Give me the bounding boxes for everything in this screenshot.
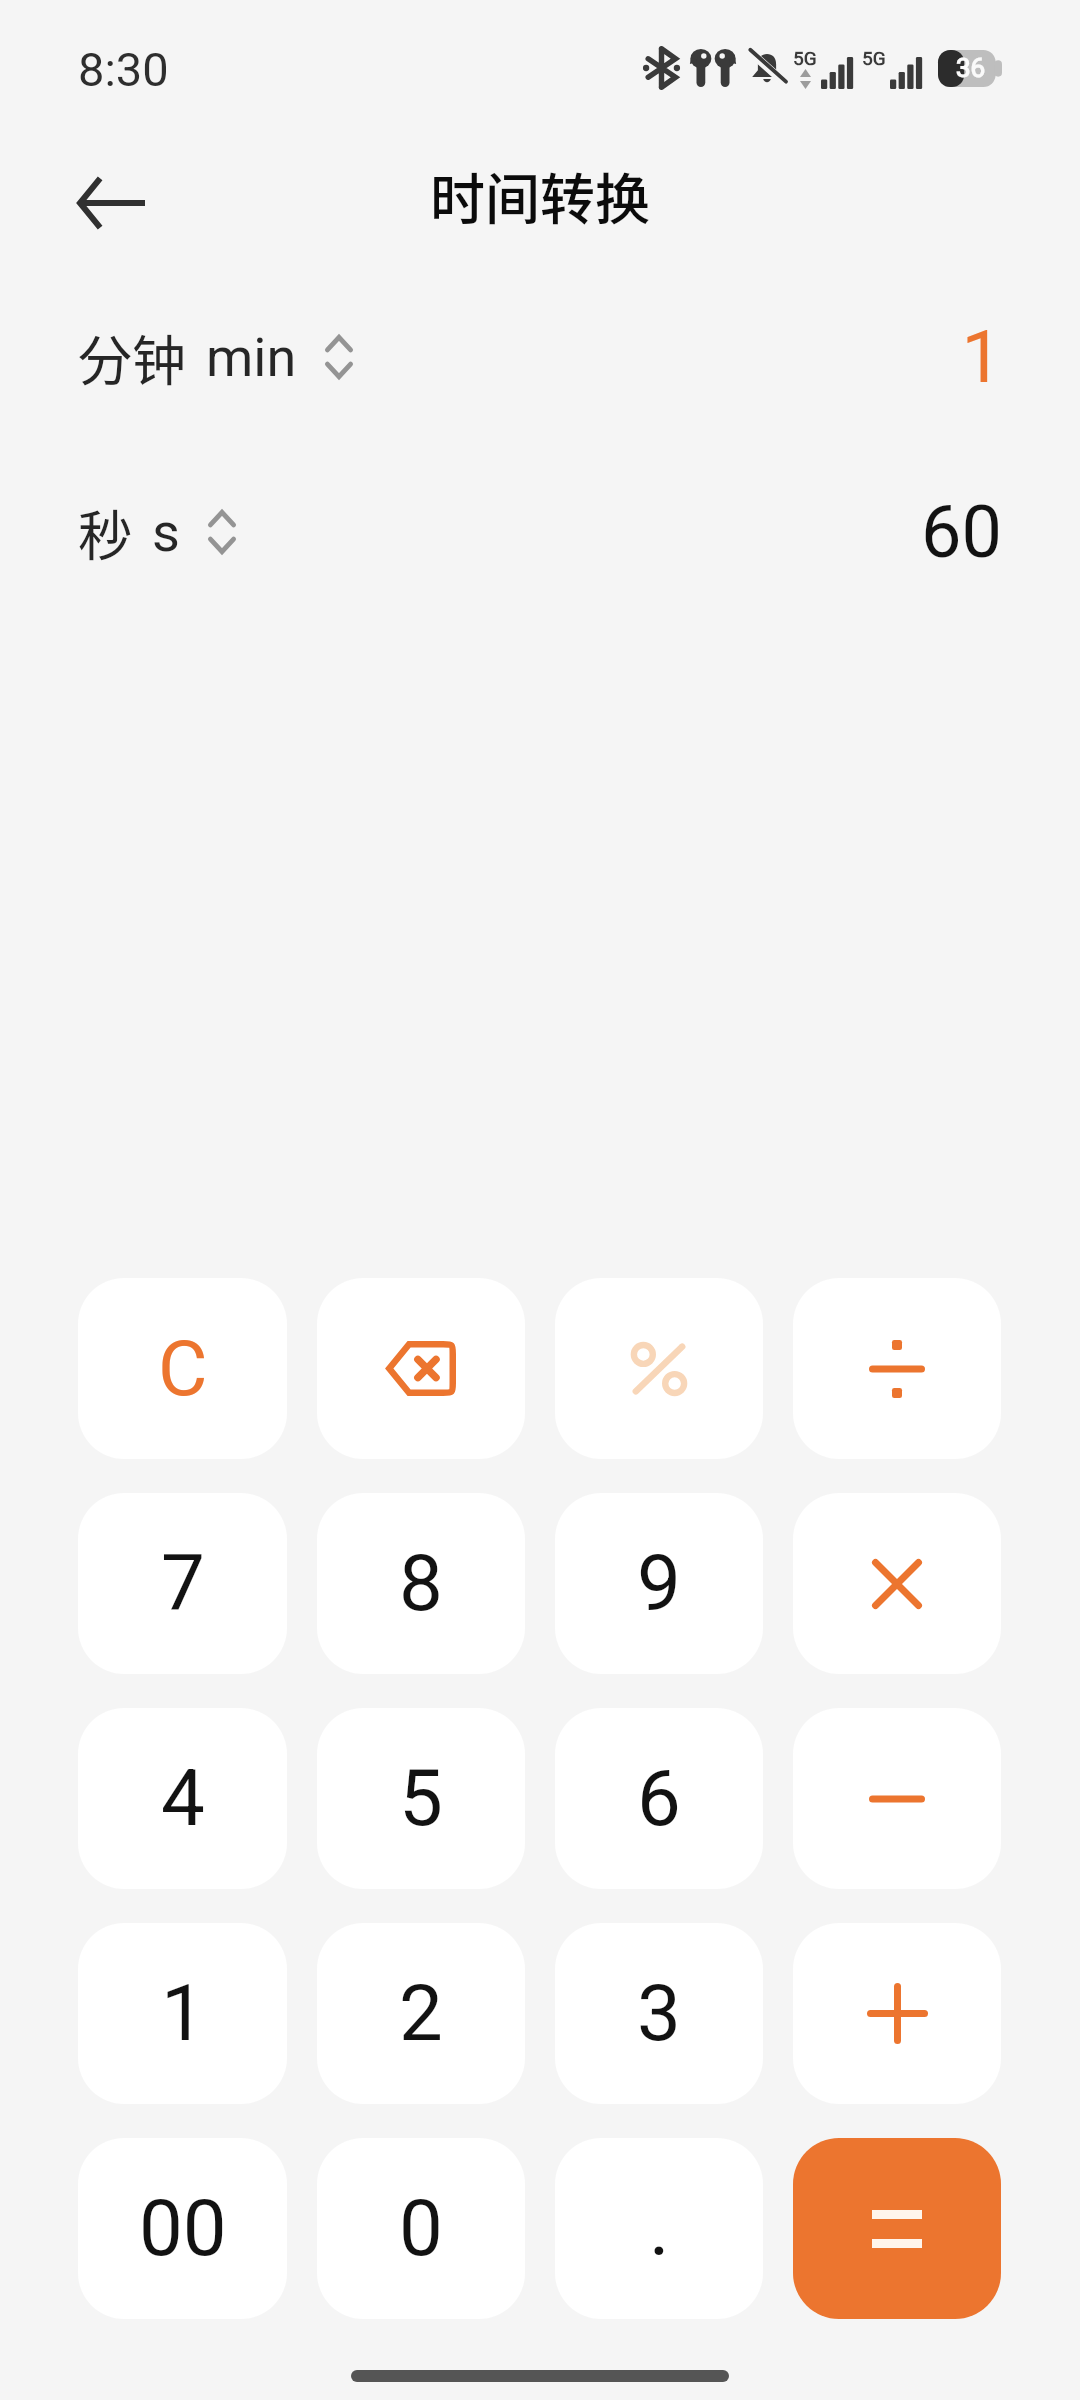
button[interactable]: 0: [317, 2138, 525, 2319]
button[interactable]: 1: [78, 1923, 287, 2104]
staticText: 秒: [78, 493, 132, 571]
button[interactable]: Back: [41, 138, 181, 268]
staticText: 5G: [862, 47, 886, 69]
button[interactable]: 2: [317, 1923, 525, 2104]
staticText: 0: [399, 2183, 443, 2274]
staticText: C: [158, 1324, 208, 1413]
button[interactable]: Delete: [317, 1278, 525, 1459]
staticText: 7: [161, 1538, 205, 1629]
button[interactable]: 5: [317, 1708, 525, 1889]
button[interactable]: Clear: [78, 1278, 287, 1459]
button[interactable]: 6: [555, 1708, 763, 1889]
button[interactable]: Equals: [793, 2138, 1001, 2319]
staticText: 8: [399, 1538, 443, 1629]
staticText: 8:30: [78, 42, 169, 97]
button[interactable]: 8: [317, 1493, 525, 1674]
staticText: 5: [399, 1753, 443, 1844]
button[interactable]: 秒: [0, 445, 1080, 619]
staticText: 60: [921, 490, 1002, 574]
button[interactable]: Percent: [555, 1278, 763, 1459]
staticText: 1: [961, 315, 1002, 399]
staticText: 1: [161, 1968, 205, 2059]
staticText: 00: [139, 2183, 227, 2274]
staticText: 9: [637, 1538, 681, 1629]
button[interactable]: .: [555, 2138, 763, 2319]
staticText: s: [152, 501, 180, 564]
staticText: 2: [399, 1968, 443, 2059]
button[interactable]: 9: [555, 1493, 763, 1674]
button[interactable]: 分钟: [0, 270, 1080, 444]
button[interactable]: 3: [555, 1923, 763, 2104]
staticText: 4: [161, 1753, 205, 1844]
button[interactable]: 4: [78, 1708, 287, 1889]
staticText: 时间转换: [430, 155, 651, 235]
staticText: min: [206, 326, 297, 389]
staticText: .: [649, 2183, 670, 2274]
button[interactable]: 7: [78, 1493, 287, 1674]
staticText: 5G: [793, 47, 817, 69]
button[interactable]: Divide: [793, 1278, 1001, 1459]
button[interactable]: Multiply: [793, 1493, 1001, 1674]
staticText: 分钟: [78, 318, 186, 396]
button[interactable]: Minus: [793, 1708, 1001, 1889]
staticText: 6: [637, 1753, 681, 1844]
staticText: 36: [956, 53, 986, 83]
staticText: 3: [637, 1968, 681, 2059]
button[interactable]: 00: [78, 2138, 287, 2319]
button[interactable]: Plus: [793, 1923, 1001, 2104]
